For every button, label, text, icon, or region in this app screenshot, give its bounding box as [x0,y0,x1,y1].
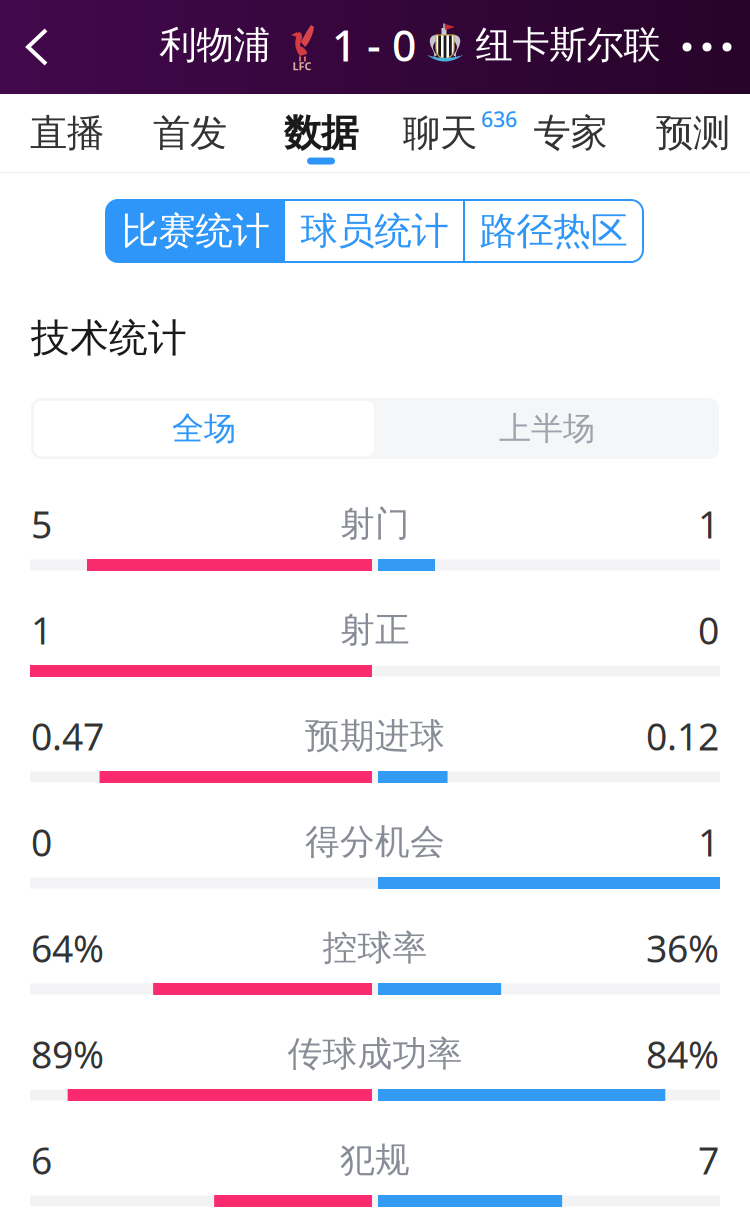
staticText: 纽卡斯尔联 [475,22,660,68]
staticText: 89% [31,1029,104,1079]
staticText: 直播 [30,110,104,156]
staticText: LFC [292,59,311,73]
button[interactable]: Back [0,0,76,94]
button[interactable]: 上半场 [375,398,719,459]
staticText: 1 [31,605,52,655]
button[interactable]: More [670,0,744,94]
staticText: 64% [31,923,104,973]
staticText: 传球成功率 [287,1033,462,1075]
button[interactable]: 预测 [637,94,749,173]
staticText: 技术统计 [31,314,187,362]
staticText: 专家 [533,110,607,156]
staticText: 上半场 [499,409,595,448]
button[interactable]: 专家 [514,94,626,173]
staticText: 路径热区 [479,208,627,254]
button[interactable]: 比赛统计 [106,200,285,262]
staticText: 36% [646,923,719,973]
staticText: 0.47 [31,711,104,761]
staticText: 6 [31,1135,52,1185]
button[interactable]: 全场 [33,400,375,457]
staticText: 得分机会 [305,821,445,863]
staticText: 0 [698,605,719,655]
staticText: 1 - 0 [332,17,416,73]
button[interactable]: 数据 [265,94,377,173]
button[interactable]: 聊天 [384,94,496,173]
staticText: 0 [31,817,52,867]
staticText: 7 [698,1135,719,1185]
staticText: 数据 [284,110,358,156]
staticText: 0.12 [646,711,719,761]
staticText: 全场 [172,409,236,448]
staticText: 犯规 [340,1139,410,1181]
staticText: 球员统计 [300,208,448,254]
staticText: 1 [698,499,719,549]
button[interactable]: 球员统计 [285,200,464,262]
staticText: 首发 [153,110,227,156]
staticText: 预测 [656,110,730,156]
staticText: 比赛统计 [121,208,269,254]
staticText: 利物浦 [159,22,270,68]
staticText: 636 [481,105,517,133]
staticText: 84% [646,1029,719,1079]
button[interactable]: 首发 [134,94,246,173]
staticText: 射正 [340,609,410,651]
staticText: 控球率 [322,927,427,969]
button[interactable]: 路径热区 [464,200,643,262]
staticText: 预期进球 [305,715,445,757]
button[interactable]: 直播 [11,94,123,173]
staticText: 1 [698,817,719,867]
staticText: 5 [31,499,52,549]
staticText: 射门 [340,503,410,545]
staticText: 聊天 [403,110,477,156]
